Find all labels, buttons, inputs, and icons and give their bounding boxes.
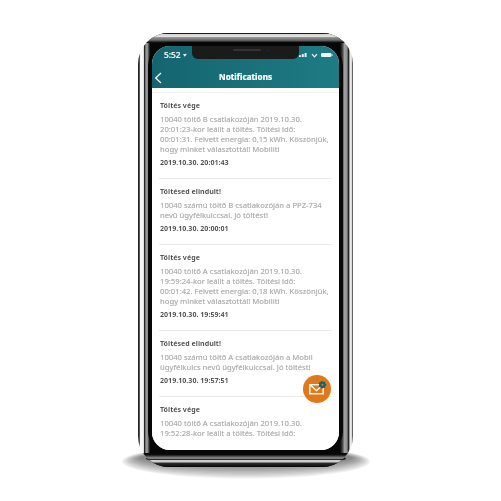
staticText: 10040 töltő B csatlakozóján 2019.10.30. … — [160, 114, 329, 154]
button[interactable]: Töltésed elindult! — [152, 179, 339, 244]
staticText: 2019.10.30. 20:00:01 — [160, 223, 229, 233]
staticText: Töltésed elindult! — [160, 338, 221, 348]
staticText: 5:52 — [164, 49, 181, 60]
staticText: 10040 számú töltő B csatlakozóján a PPZ-… — [160, 200, 329, 220]
staticText: Töltés vége — [160, 252, 200, 262]
staticText: 10040 töltő A csatlakozóján 2019.10.30. … — [160, 418, 329, 439]
staticText: Notifications — [219, 71, 273, 82]
staticText: 10040 számú töltő A csatlakozóján a Mobi… — [160, 352, 329, 372]
staticText: 2019.10.30. 20:01:43 — [160, 157, 229, 167]
button[interactable]: Back — [152, 60, 170, 88]
button[interactable]: Compose message — [303, 375, 331, 403]
staticText: 2019.10.30. 19:59:41 — [160, 309, 229, 319]
button[interactable]: Töltés vége — [152, 397, 339, 450]
staticText: 2019.10.30. 19:57:51 — [160, 375, 229, 385]
staticText: Töltésed elindult! — [160, 186, 221, 196]
staticText: 10040 töltő A csatlakozóján 2019.10.30. … — [160, 266, 329, 306]
staticText: Töltés vége — [160, 404, 200, 414]
button[interactable]: Töltés vége — [152, 245, 339, 330]
button[interactable]: Töltés vége — [152, 93, 339, 178]
staticText: Töltés vége — [160, 100, 200, 110]
button[interactable]: Töltésed elindult! — [152, 331, 339, 396]
